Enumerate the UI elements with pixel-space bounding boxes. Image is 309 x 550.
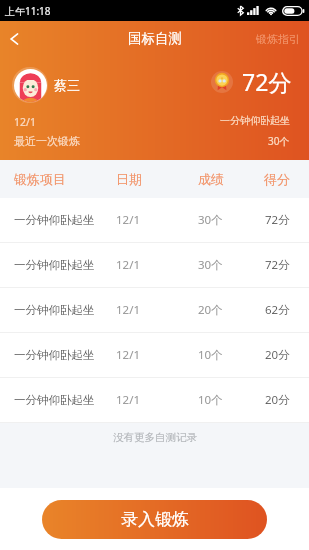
staticText: 一分钟仰卧起坐 [14, 348, 95, 362]
staticText: 上午11:18 [5, 4, 51, 18]
staticText: 12/1 [14, 115, 36, 129]
staticText: 30个 [198, 257, 223, 273]
button[interactable]: 锻炼指引 [247, 21, 309, 57]
staticText: 得分 [264, 171, 290, 187]
staticText: 一分钟仰卧起坐 [14, 303, 95, 317]
button[interactable]: 一分钟仰卧起坐 [0, 378, 309, 423]
staticText: 20个 [198, 302, 223, 318]
button[interactable]: 一分钟仰卧起坐 [0, 333, 309, 378]
staticText: 蔡三 [54, 77, 80, 93]
button[interactable]: Back [0, 21, 28, 57]
staticText: 72分 [265, 212, 290, 228]
staticText: 最近一次锻炼 [14, 134, 80, 148]
button[interactable]: 一分钟仰卧起坐 [0, 198, 309, 243]
button[interactable]: 录入锻炼 [42, 500, 267, 539]
staticText: 12/1 [116, 392, 141, 408]
staticText: 12/1 [116, 257, 141, 273]
staticText: 20分 [265, 347, 290, 363]
staticText: 12/1 [116, 302, 141, 318]
button[interactable]: 一分钟仰卧起坐 [0, 243, 309, 288]
staticText: 10个 [198, 347, 223, 363]
staticText: 72分 [242, 66, 292, 97]
staticText: 成绩 [198, 171, 224, 187]
staticText: 一分钟仰卧起坐 [14, 213, 95, 227]
staticText: 日期 [116, 171, 142, 187]
staticText: 62分 [265, 302, 290, 318]
staticText: 30个 [198, 212, 223, 228]
staticText: 10个 [198, 392, 223, 408]
staticText: 一分钟仰卧起坐 [14, 258, 95, 272]
staticText: 锻炼项目 [14, 171, 66, 187]
staticText: 一分钟仰卧起坐 [220, 114, 290, 127]
staticText: 72分 [265, 257, 290, 273]
staticText: 锻炼指引 [256, 32, 300, 46]
staticText: 没有更多自测记录 [113, 431, 197, 444]
button[interactable]: 一分钟仰卧起坐 [0, 288, 309, 333]
staticText: 一分钟仰卧起坐 [14, 393, 95, 407]
staticText: 录入锻炼 [121, 509, 189, 530]
staticText: 国标自测 [128, 30, 182, 47]
staticText: 12/1 [116, 347, 141, 363]
staticText: 30个 [268, 134, 290, 148]
staticText: 12/1 [116, 212, 141, 228]
staticText: 20分 [265, 392, 290, 408]
